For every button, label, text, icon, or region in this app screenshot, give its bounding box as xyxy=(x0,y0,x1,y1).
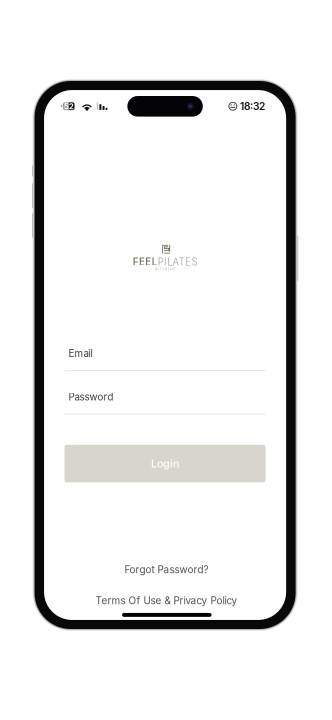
staticText: PILATES xyxy=(158,256,197,268)
staticText: Email xyxy=(69,348,93,359)
staticText: 52 xyxy=(64,101,74,111)
button[interactable]: Email xyxy=(65,349,266,371)
button[interactable]: Login xyxy=(65,445,266,482)
staticText: Terms Of Use & Privacy Policy xyxy=(95,595,237,606)
button[interactable]: Terms Of Use & Privacy Policy xyxy=(45,594,288,606)
button[interactable]: Forgot Password? xyxy=(45,562,288,576)
button[interactable]: Password xyxy=(65,392,266,415)
staticText: Login xyxy=(151,457,179,470)
staticText: Password xyxy=(69,391,114,403)
staticText: FEEL xyxy=(133,256,158,268)
staticText: 18:32 xyxy=(240,100,265,112)
staticText: Be Fit & Feel xyxy=(155,267,175,271)
staticText: Forgot Password? xyxy=(124,564,208,575)
